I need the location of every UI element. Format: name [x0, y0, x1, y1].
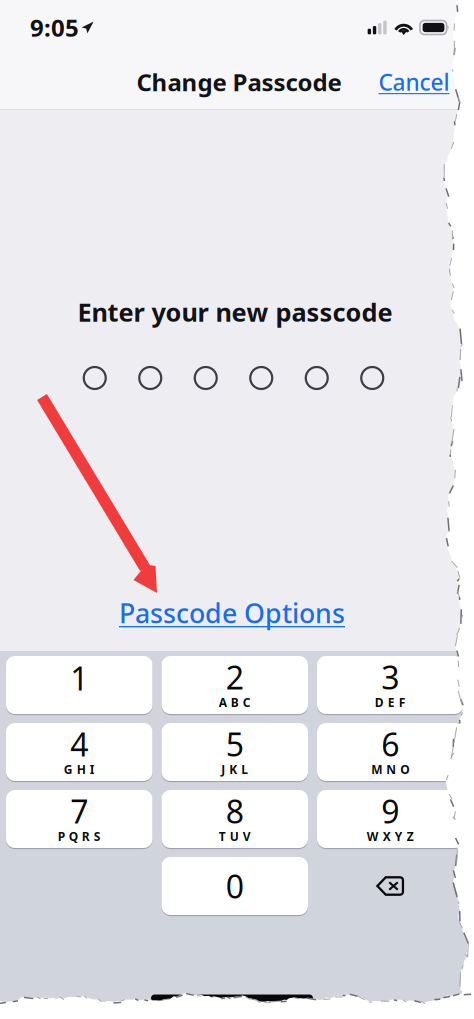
staticText: 6 [381, 723, 399, 765]
button[interactable]: 5 [161, 723, 308, 781]
button[interactable]: Cancel [378, 67, 449, 97]
button[interactable]: 7 [6, 790, 152, 848]
staticText: 3 [381, 656, 399, 698]
staticText: Cancel [378, 67, 449, 97]
button[interactable]: 0 [161, 857, 308, 915]
staticText: 0 [226, 865, 244, 907]
staticText: A B C [219, 694, 251, 710]
staticText: 9 [381, 790, 399, 832]
staticText: 9:05 [30, 12, 79, 43]
staticText: Change Passcode [136, 66, 341, 98]
staticText: J K L [221, 761, 248, 777]
button[interactable]: Passcode Options [119, 595, 345, 631]
staticText: G H I [64, 761, 95, 777]
button[interactable]: 2 [161, 656, 308, 714]
button[interactable]: 8 [161, 790, 308, 848]
button[interactable]: 9 [317, 790, 463, 848]
staticText: 8 [226, 790, 244, 832]
staticText: T U V [219, 828, 251, 844]
staticText: W X Y Z [367, 828, 414, 844]
staticText: Enter your new passcode [77, 295, 392, 329]
button[interactable]: Change Passcode [136, 66, 341, 98]
button[interactable]: 1 [6, 656, 152, 714]
staticText: 2 [226, 656, 244, 698]
button[interactable]: 4 [6, 723, 152, 781]
button[interactable]: 3 [317, 656, 463, 714]
staticText: 4 [70, 723, 88, 765]
button[interactable]: 6 [317, 723, 463, 781]
button[interactable]: Delete [317, 857, 463, 915]
staticText: D E F [375, 694, 406, 710]
staticText: M N O [371, 761, 409, 777]
staticText: P Q R S [58, 828, 101, 844]
staticText: 1 [70, 657, 88, 699]
staticText: 5 [226, 723, 244, 765]
staticText: 7 [70, 790, 88, 832]
staticText: Passcode Options [119, 595, 345, 631]
